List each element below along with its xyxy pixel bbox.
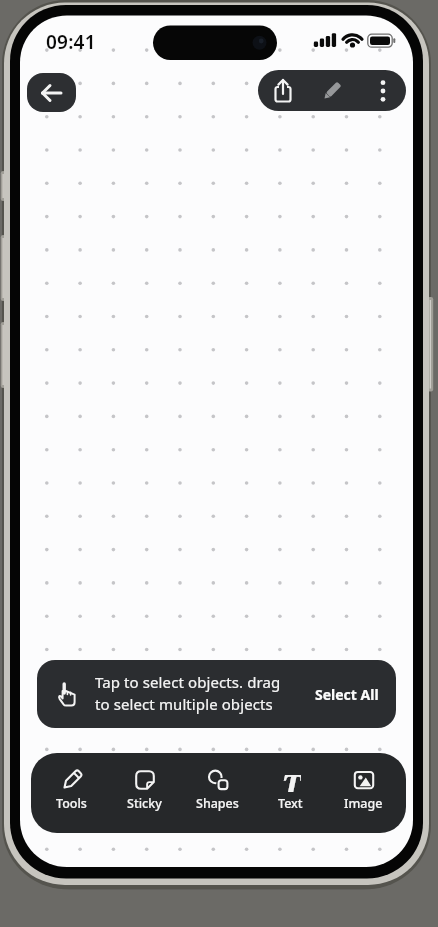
button[interactable]: Shapes xyxy=(181,753,254,833)
staticText: Tap to select objects. drag xyxy=(95,672,281,692)
button[interactable] xyxy=(366,74,399,107)
button[interactable]: Select All xyxy=(309,680,385,708)
staticText: T xyxy=(282,765,301,792)
staticText: Text xyxy=(278,795,303,812)
button[interactable]: Image xyxy=(327,753,400,833)
button[interactable] xyxy=(315,74,348,107)
staticText: Select All xyxy=(315,685,379,704)
staticText: to select multiple objects xyxy=(95,694,273,714)
button[interactable] xyxy=(266,74,299,107)
button[interactable] xyxy=(27,73,76,112)
staticText: 09:41 xyxy=(46,29,96,55)
staticText: Sticky xyxy=(127,795,162,812)
button[interactable]: Tools xyxy=(35,753,108,833)
button[interactable]: T xyxy=(254,753,327,833)
button[interactable]: Sticky xyxy=(108,753,181,833)
button[interactable]: Tap to select objects. drag xyxy=(37,660,396,728)
staticText: Tools xyxy=(56,795,87,812)
staticText: Shapes xyxy=(196,795,239,812)
staticText: Image xyxy=(344,795,383,812)
